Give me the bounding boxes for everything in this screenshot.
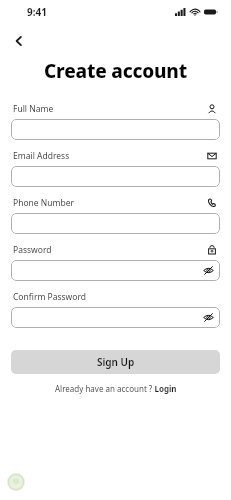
staticText: Email Address: [13, 150, 70, 162]
staticText: Already have an account ? Login: [55, 383, 177, 394]
staticText: Password: [13, 244, 52, 256]
button[interactable]: Email: [206, 150, 218, 162]
staticText: Confirm Password: [13, 291, 86, 303]
button[interactable]: [11, 213, 220, 234]
button[interactable]: Show password: [202, 311, 215, 324]
staticText: Phone Number: [13, 197, 74, 209]
staticText: Full Name: [13, 103, 54, 115]
button[interactable]: Full name: [206, 103, 218, 115]
staticText: 9:41: [27, 5, 47, 19]
staticText: Sign Up: [97, 355, 135, 369]
button[interactable]: Show password: [202, 264, 215, 277]
button[interactable]: Password: [206, 244, 218, 256]
button[interactable]: Already have an account ? Login: [0, 383, 231, 394]
staticText: Create account: [0, 58, 231, 84]
button[interactable]: Show password: [11, 260, 220, 281]
button[interactable]: Phone: [206, 197, 218, 209]
button[interactable]: Show password: [11, 307, 220, 328]
button[interactable]: [11, 119, 220, 140]
button[interactable]: Back: [8, 30, 30, 52]
button[interactable]: Sign Up: [11, 350, 220, 374]
button[interactable]: [11, 166, 220, 187]
